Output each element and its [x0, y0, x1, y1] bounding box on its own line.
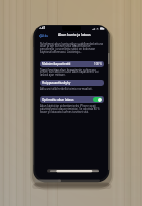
staticText: Tämä ilmoittaa akun kapasiteetin suhtees…	[40, 68, 103, 77]
staticText: Puhelimesi akun kunto näkyy uudelleenlas…	[40, 42, 105, 54]
staticText: 100 %	[94, 62, 102, 66]
button[interactable]: Back to Akku	[38, 33, 50, 39]
staticText: Huippusuorituskyky	[42, 81, 71, 85]
button[interactable]: Optimoitu akun lataus	[40, 96, 104, 103]
staticText: Akun kunto ja lataus	[58, 33, 91, 37]
staticText: Optimoitu akun lataus	[42, 98, 74, 102]
button[interactable]: Huippusuorituskyky	[40, 80, 104, 86]
staticText: Akun käyttöiän pidentämiseksi iPhone opp…	[40, 104, 103, 114]
staticText: Maksimikapasiteetti	[42, 62, 71, 66]
staticText: Akku	[41, 34, 49, 38]
staticText: 9.41	[39, 26, 46, 30]
staticText: Akku voi tällä hetkellä toimia normaalis…	[40, 87, 93, 91]
button[interactable]: Maksimikapasiteetti	[40, 61, 104, 67]
